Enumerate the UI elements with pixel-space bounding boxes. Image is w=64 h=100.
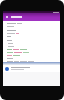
button[interactable] (5, 65, 58, 72)
button[interactable]: Navigate up (5, 15, 9, 19)
